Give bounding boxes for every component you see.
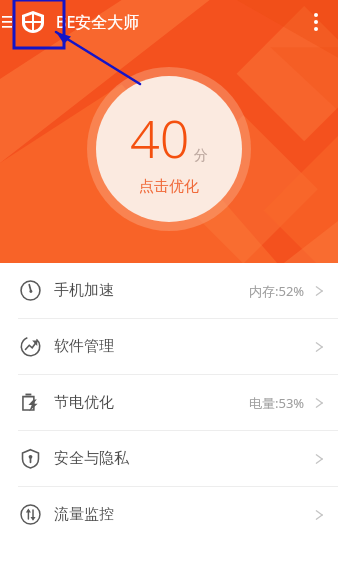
staticText: 电量:53% [249, 394, 305, 412]
staticText: 分 [194, 147, 208, 165]
button[interactable]: App logo [14, 3, 52, 41]
staticText: 安全与隐私 [54, 449, 129, 468]
button[interactable]: 安全与隐私 [0, 431, 338, 486]
button[interactable]: 流量监控 [0, 487, 338, 542]
button[interactable]: 软件管理 [0, 319, 338, 374]
staticText: 流量监控 [54, 505, 114, 524]
staticText: 点击优化 [139, 177, 199, 196]
staticText: 40 [130, 102, 190, 173]
staticText: BE安全大师 [56, 11, 140, 33]
button[interactable]: Menu [0, 0, 14, 44]
staticText: 节电优化 [54, 393, 114, 412]
button[interactable]: 40 [87, 67, 251, 231]
staticText: 软件管理 [54, 337, 114, 356]
button[interactable]: More options [294, 0, 338, 44]
staticText: 手机加速 [54, 281, 114, 300]
staticText: 内存:52% [249, 282, 305, 300]
button[interactable]: 手机加速 [0, 263, 338, 318]
button[interactable]: 节电优化 [0, 375, 338, 430]
